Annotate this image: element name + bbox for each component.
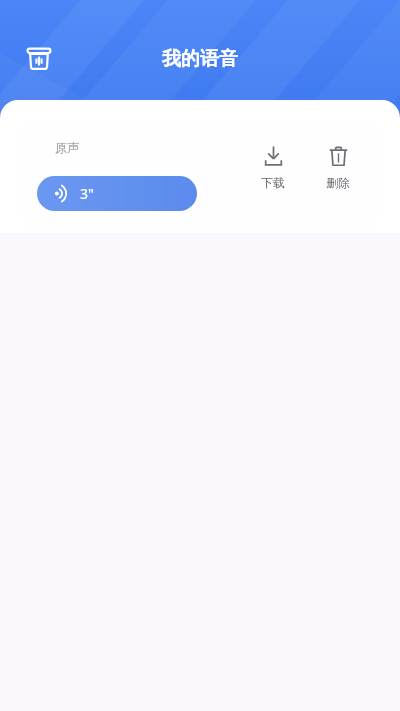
staticText: 原声 bbox=[55, 140, 79, 155]
staticText: 下载 bbox=[261, 175, 285, 190]
button[interactable]: 3" bbox=[37, 176, 197, 211]
staticText: 我的语音 bbox=[0, 47, 400, 71]
staticText: 3" bbox=[80, 184, 94, 203]
button[interactable]: 我的语音 bbox=[22, 42, 56, 76]
button[interactable]: 下载 bbox=[244, 145, 302, 190]
button[interactable]: 原声 bbox=[22, 119, 378, 232]
button[interactable]: 删除 bbox=[309, 145, 367, 190]
staticText: 删除 bbox=[326, 175, 350, 190]
